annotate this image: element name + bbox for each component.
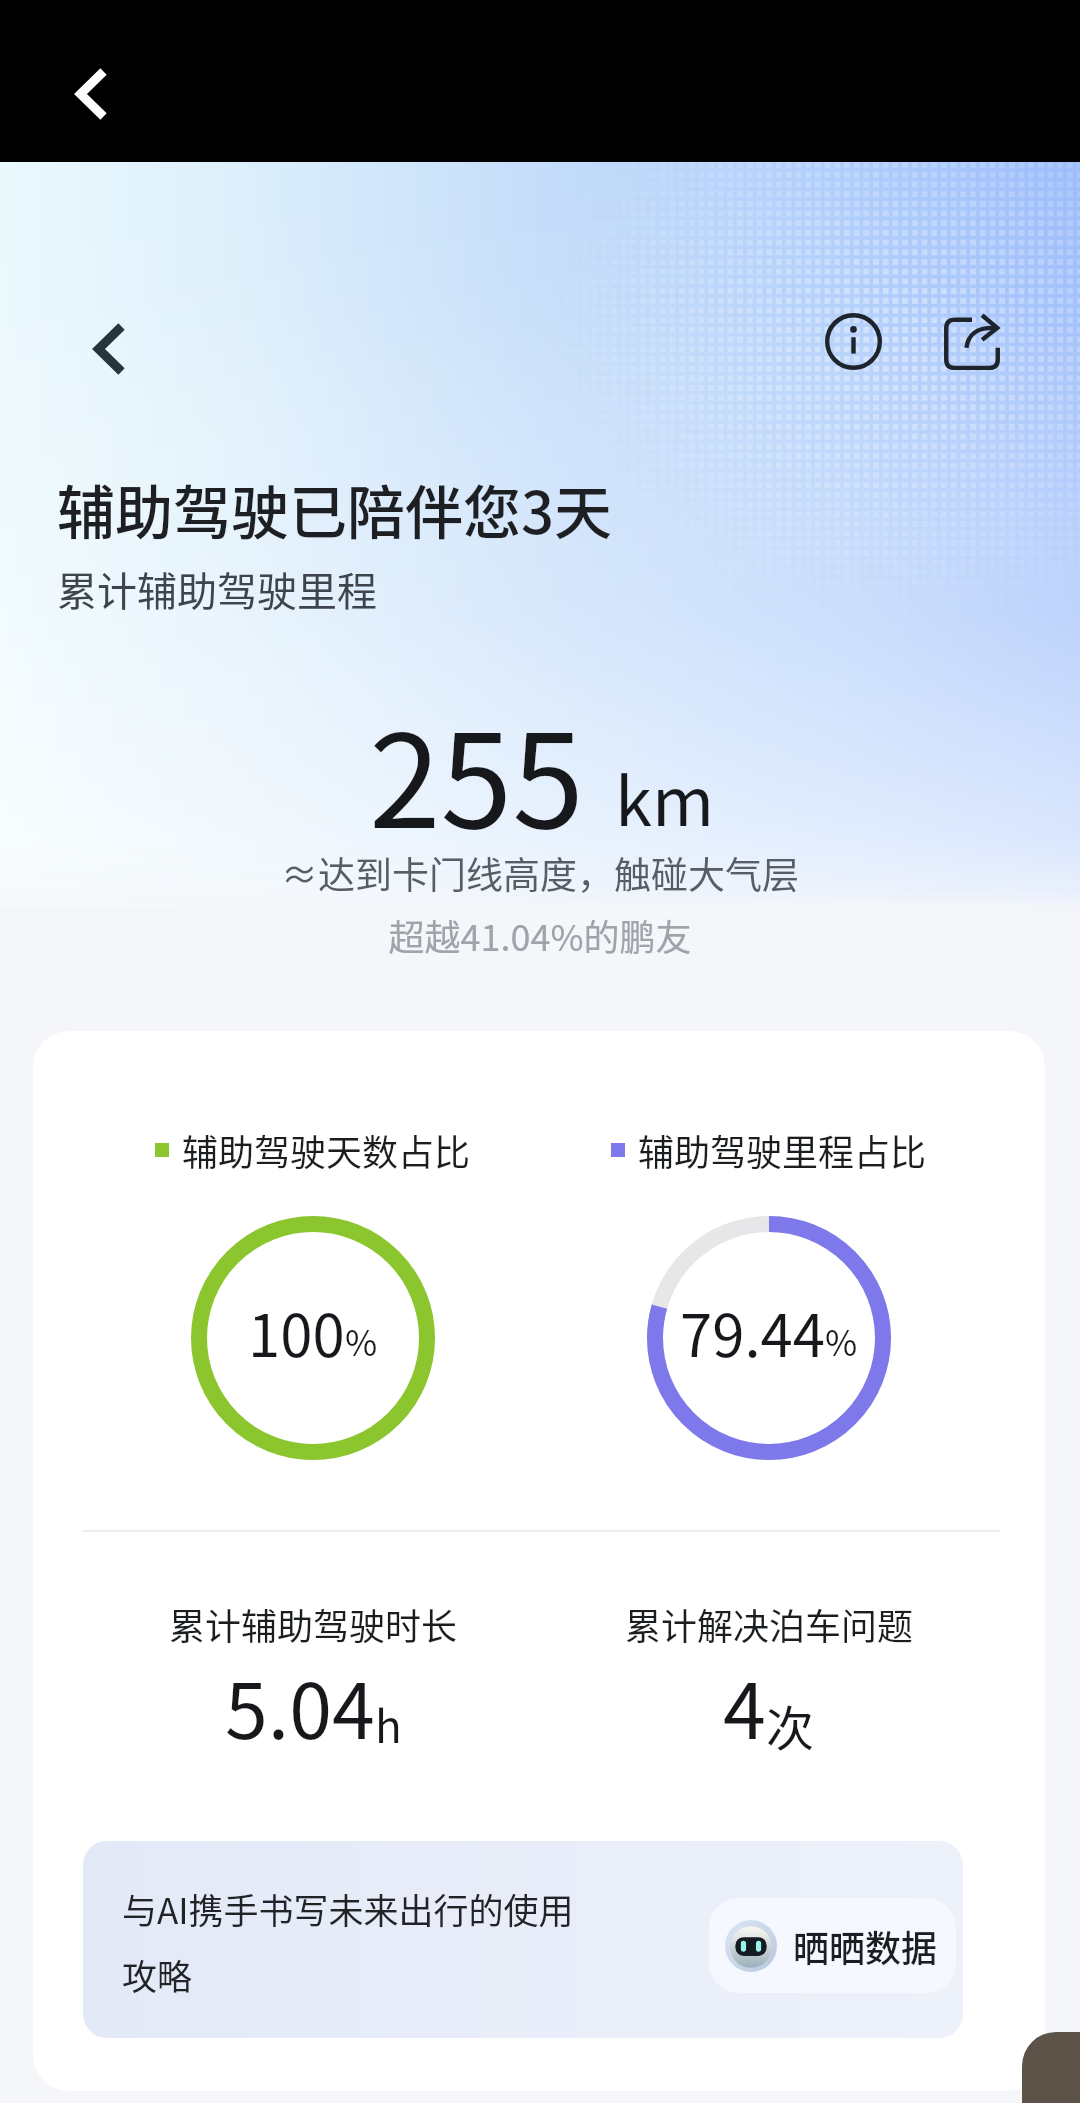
staticText: 辅助驾驶天数占比 [182,1124,471,1176]
staticText: 与AI携手书写未来出行的使用 攻略 [122,1883,574,2000]
button[interactable]: Information [809,297,897,385]
staticText: 辅助驾驶里程占比 [638,1124,927,1176]
staticText: 累计解决泊车问题 [625,1598,914,1650]
button[interactable]: 晒晒数据 [709,1898,956,1993]
staticText: 累计辅助驾驶时长 [169,1598,458,1650]
staticText: % [825,1315,858,1366]
staticText: 4 [723,1650,766,1761]
button[interactable]: Back [66,305,154,393]
staticText: 79.44 [680,1290,825,1374]
button[interactable]: Assistant [1022,2032,1080,2103]
staticText: km [615,748,715,845]
button[interactable]: Share [928,297,1016,385]
staticText: 次 [766,1690,815,1760]
staticText: 辅助驾驶已陪伴您3天 [57,467,613,551]
staticText: 100 [248,1290,345,1374]
button[interactable]: Back [48,50,136,138]
staticText: 超越41.04%的鹏友 [0,909,1080,961]
staticText: 累计辅助驾驶里程 [57,560,377,618]
staticText: 晒晒数据 [793,1920,938,1972]
staticText: % [345,1315,378,1366]
staticText: h [375,1692,402,1756]
staticText: 5.04 [225,1650,375,1761]
staticText: 255 [369,678,584,865]
staticText: ≈达到卡门线高度，触碰大气层 [0,846,1080,900]
